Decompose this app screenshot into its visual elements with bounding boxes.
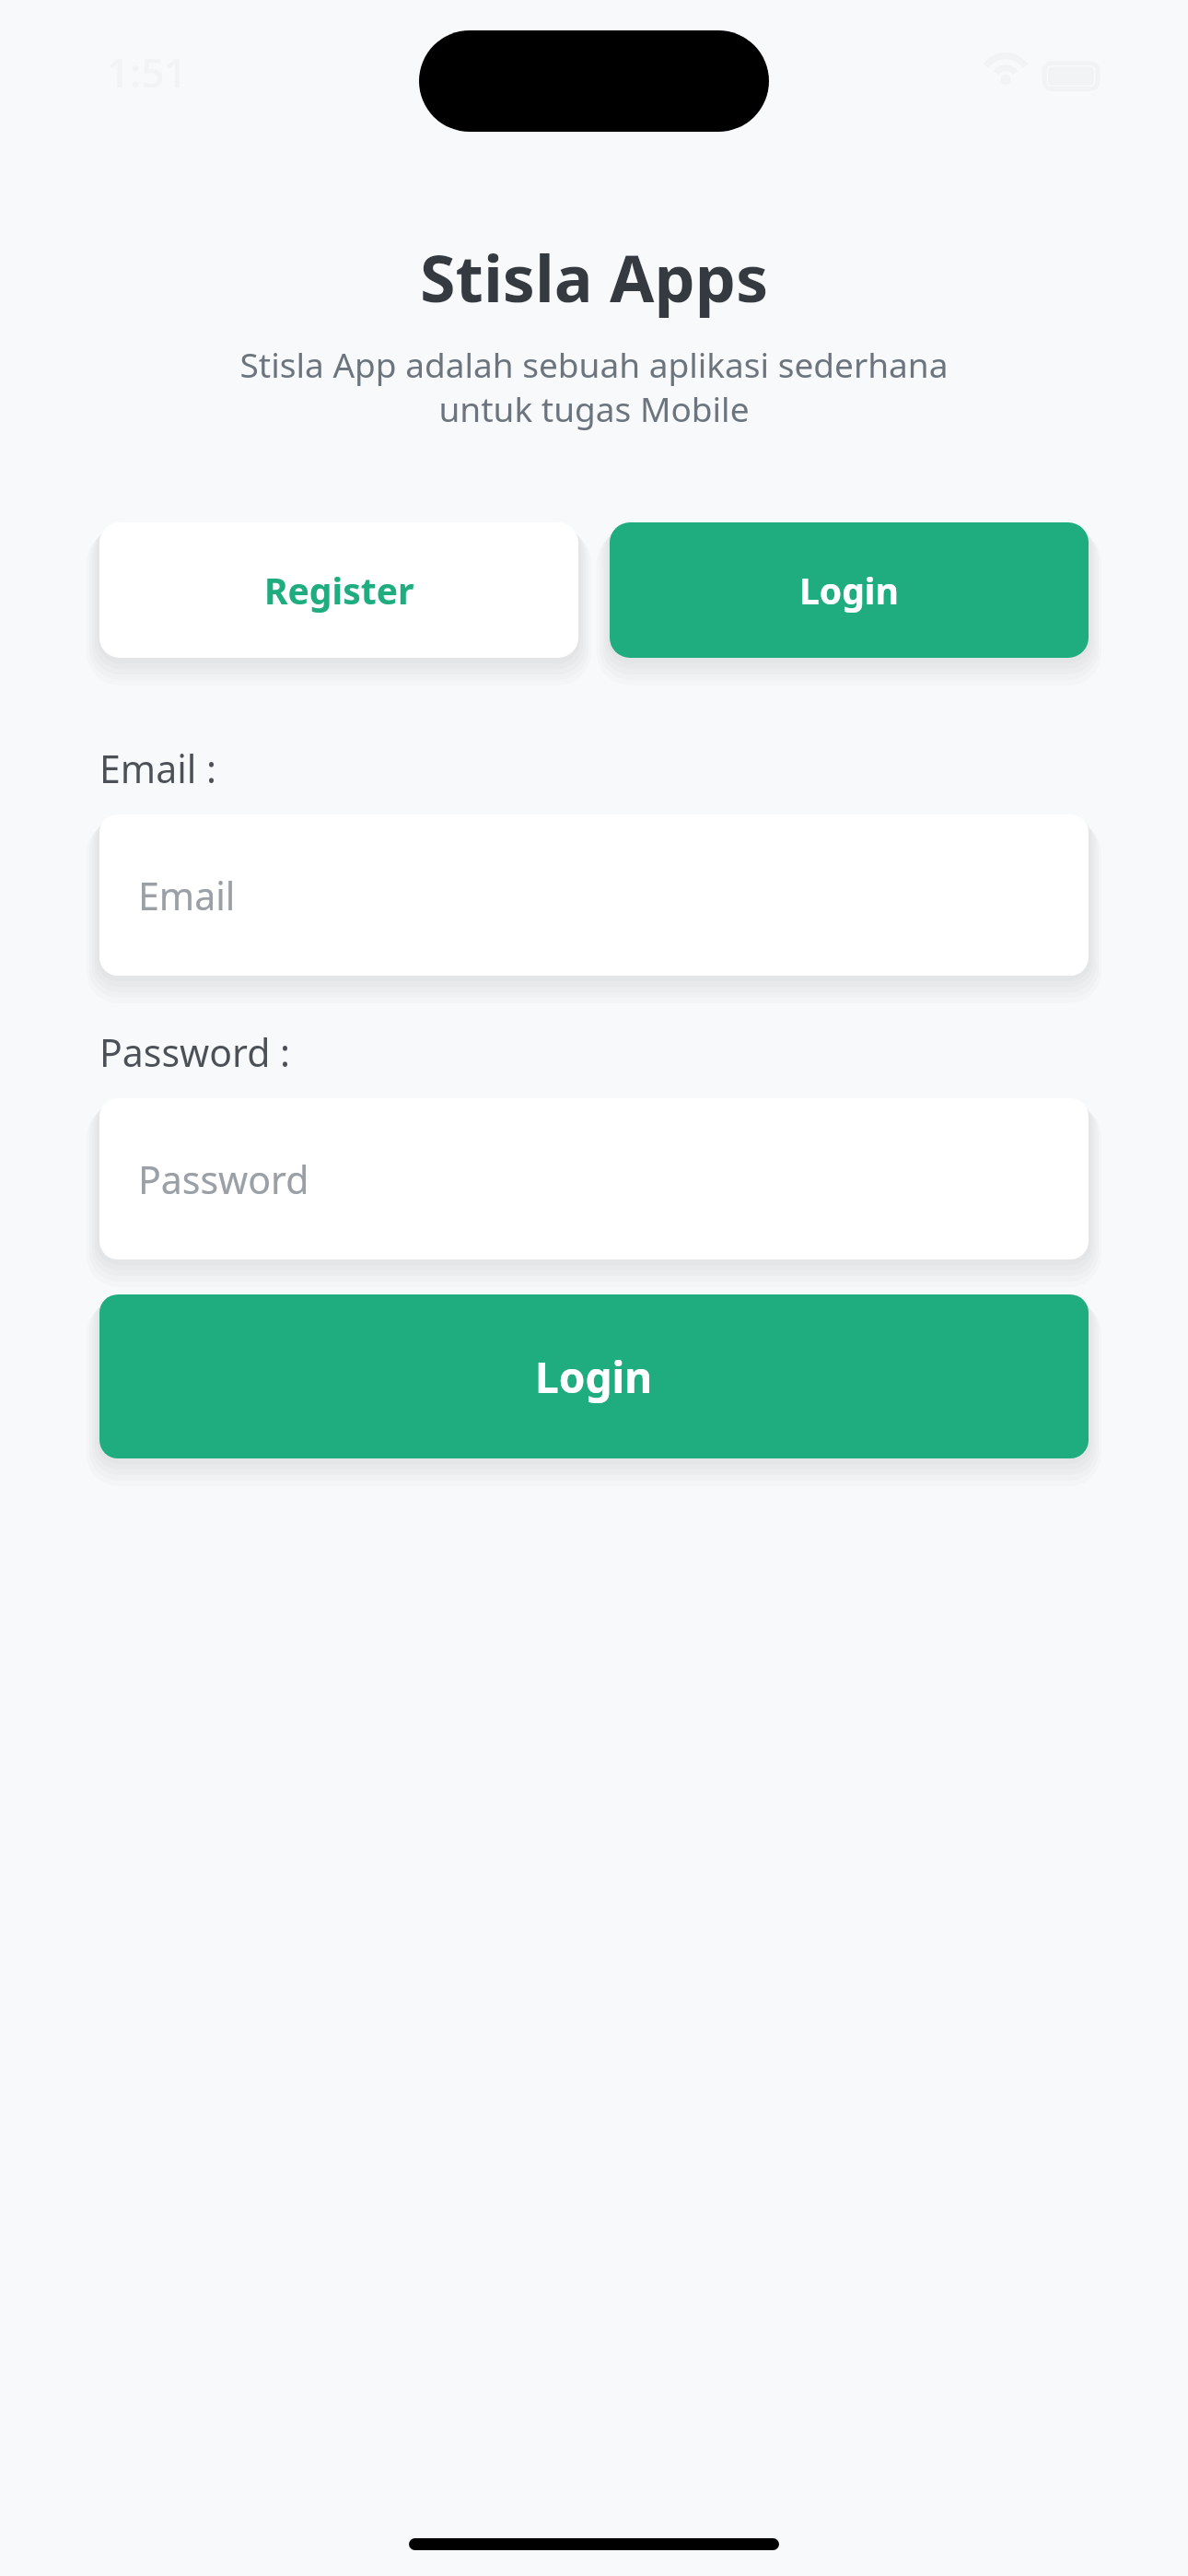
staticText: Email	[138, 870, 236, 921]
other: Home indicator	[409, 2538, 779, 2550]
button[interactable]: Login	[99, 1294, 1089, 1458]
staticText: Password :	[99, 1026, 1188, 1078]
staticText: Login	[799, 566, 899, 615]
staticText: Stisla Apps	[0, 233, 1188, 321]
staticText: Email :	[99, 743, 1188, 794]
staticText: Register	[264, 566, 414, 615]
staticText: Stisla App adalah sebuah aplikasi sederh…	[92, 341, 1096, 432]
staticText: Login	[535, 1348, 653, 1406]
button[interactable]: Email	[99, 814, 1089, 976]
button[interactable]: Login	[610, 522, 1089, 658]
button[interactable]: Password	[99, 1098, 1089, 1259]
staticText: Password	[138, 1153, 309, 1205]
button[interactable]: Register	[99, 522, 578, 658]
